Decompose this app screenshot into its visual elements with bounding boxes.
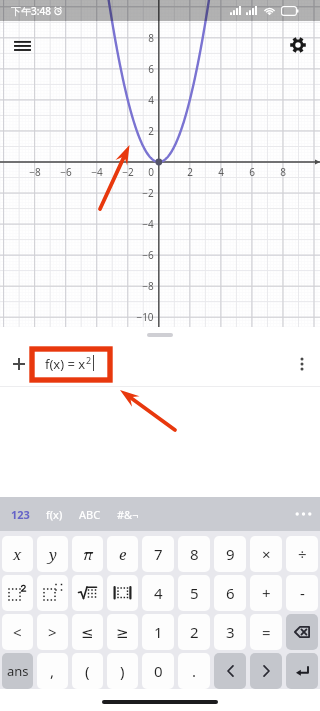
button[interactable]: . [178,653,210,689]
staticText: −6 [60,165,72,179]
staticText: 6 [226,583,235,603]
staticText: 6 [148,62,154,76]
button[interactable]: Right [250,653,282,689]
button[interactable]: Square root [72,575,103,611]
staticText: f(x) = x [45,355,86,373]
staticText: y [49,544,57,564]
staticText: 8 [280,165,286,179]
button[interactable]: 7 [142,536,174,572]
staticText: 4 [148,93,154,107]
staticText: . [192,661,197,681]
staticText: 7 [154,544,163,564]
staticText: −2 [142,186,154,200]
staticText: > [48,622,57,642]
button[interactable]: e [107,536,138,572]
button[interactable]: Square [2,575,33,611]
button[interactable]: 8 [178,536,210,572]
staticText: ≥ [116,624,129,641]
staticText: 5 [190,583,199,603]
staticText: 1 [154,622,163,642]
staticText: 8 [190,544,199,564]
staticText: 下午3:48 [11,4,51,18]
button[interactable]: ≥ [107,614,138,650]
button[interactable]: 6 [214,575,246,611]
staticText: = [262,622,271,642]
button[interactable]: Settings [282,29,314,61]
button[interactable]: < [2,614,33,650]
staticText: π [83,544,93,564]
button[interactable]: ÷ [286,536,318,572]
button[interactable]: More options [284,341,320,386]
staticText: ÷ [298,544,307,564]
staticText: , [50,661,55,681]
button[interactable]: 123 [3,497,38,531]
button[interactable]: ans [2,653,33,689]
staticText: e [119,544,127,564]
staticText: −2 [122,165,134,179]
staticText: 9 [226,544,235,564]
button[interactable]: 3 [214,614,246,650]
staticText: ) [120,661,125,681]
staticText: x [13,544,22,564]
button[interactable]: 0 [142,653,174,689]
staticText: 0 [148,165,154,179]
button[interactable]: f(x) [38,497,71,531]
staticText: −4 [142,217,154,231]
staticText: + [262,583,271,603]
staticText: −8 [142,279,154,293]
staticText: 123 [11,507,30,522]
button[interactable]: Menu [6,29,38,61]
button[interactable]: Power [37,575,68,611]
button[interactable]: 9 [214,536,246,572]
staticText: 4 [154,583,163,603]
button[interactable]: ) [107,653,138,689]
button[interactable]: 5 [178,575,210,611]
button[interactable]: π [72,536,103,572]
button[interactable]: Absolute value [107,575,138,611]
staticText: ( [85,661,90,681]
button[interactable]: ≤ [72,614,103,650]
button[interactable]: y [37,536,68,572]
staticText: 2 [187,165,193,179]
button[interactable]: + [250,575,282,611]
button[interactable]: #&¬ [109,497,147,531]
staticText: 0 [154,661,163,681]
button[interactable]: = [250,614,282,650]
button[interactable]: x [2,536,33,572]
staticText: 2 [148,124,154,138]
staticText: −6 [142,248,154,262]
staticText: 8 [148,31,154,45]
button[interactable]: - [286,575,318,611]
staticText: ABC [79,507,101,522]
button[interactable]: > [37,614,68,650]
staticText: −10 [136,310,154,324]
button[interactable]: Left [214,653,246,689]
staticText: #&¬ [117,507,139,522]
staticText: −8 [29,165,41,179]
button[interactable]: 2 [178,614,210,650]
staticText: ans [7,662,29,680]
button[interactable]: × [250,536,282,572]
button[interactable]: ABC [71,497,109,531]
button[interactable]: 4 [142,575,174,611]
staticText: 3 [226,622,235,642]
staticText: 4 [218,165,224,179]
staticText: 2 [86,354,92,366]
button[interactable]: ( [72,653,103,689]
button[interactable]: Backspace [286,614,318,650]
button[interactable]: More [286,497,320,531]
staticText: 6 [249,165,255,179]
staticText: - [300,583,305,603]
staticText: 2 [190,622,199,642]
staticText: ≤ [81,624,94,641]
button[interactable]: f(x) = x [0,341,320,386]
button[interactable]: 1 [142,614,174,650]
staticText: × [262,544,271,564]
button[interactable]: , [37,653,68,689]
staticText: −4 [91,165,103,179]
staticText: < [13,622,22,642]
button[interactable]: Enter [286,653,318,689]
staticText: f(x) [46,507,63,522]
